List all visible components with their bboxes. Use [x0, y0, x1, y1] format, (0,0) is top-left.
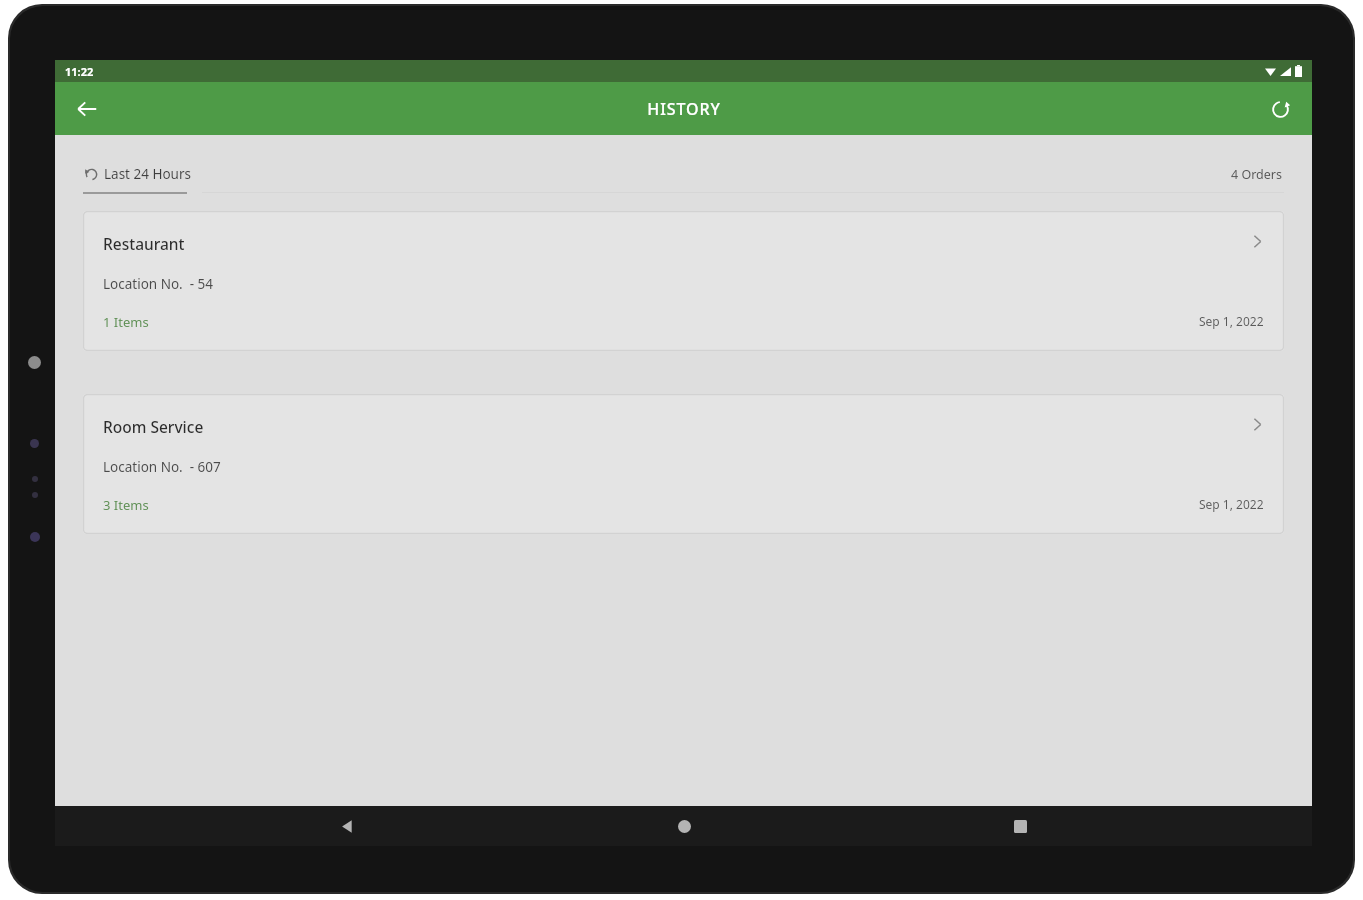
- staticText: 1 Items: [103, 313, 149, 331]
- button[interactable]: Open order details: [1238, 406, 1274, 442]
- staticText: Room Service: [103, 416, 204, 437]
- staticText: HISTORY: [647, 98, 721, 120]
- button[interactable]: Back: [302, 806, 392, 846]
- staticText: Restaurant: [103, 233, 185, 254]
- button[interactable]: Home: [639, 806, 729, 846]
- button[interactable]: Last 24 Hours: [85, 165, 192, 183]
- button[interactable]: Recent apps: [975, 806, 1065, 846]
- staticText: 11:22: [65, 64, 94, 79]
- button[interactable]: Refresh: [1258, 87, 1302, 131]
- staticText: Sep 1, 2022: [1199, 313, 1264, 329]
- staticText: Last 24 Hours: [104, 165, 192, 183]
- button[interactable]: Restaurant: [83, 211, 1284, 351]
- staticText: 4 Orders: [1231, 166, 1282, 183]
- button[interactable]: Room Service: [83, 394, 1284, 534]
- staticText: Location No. - 607: [103, 458, 221, 476]
- staticText: 3 Items: [103, 496, 149, 514]
- staticText: Sep 1, 2022: [1199, 496, 1264, 512]
- button[interactable]: Back: [65, 87, 109, 131]
- button[interactable]: Open order details: [1238, 223, 1274, 259]
- staticText: Location No. - 54: [103, 275, 214, 293]
